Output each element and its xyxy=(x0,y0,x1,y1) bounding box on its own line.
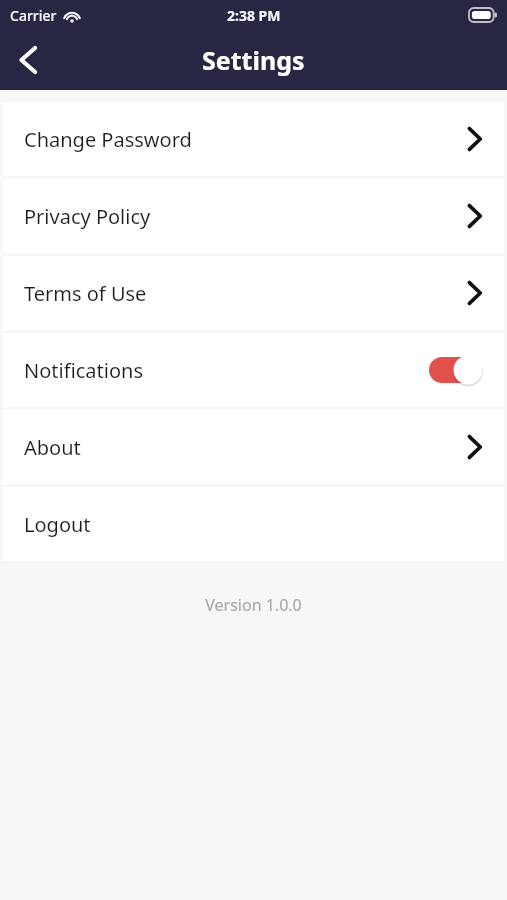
other: Terms of Use xyxy=(466,280,483,306)
button[interactable]: Back xyxy=(0,32,56,88)
staticText: Terms of Use xyxy=(24,280,147,307)
button[interactable]: About xyxy=(3,410,504,484)
staticText: Privacy Policy xyxy=(24,203,151,230)
staticText: 2:38 PM xyxy=(227,6,281,25)
other: Privacy Policy xyxy=(466,203,483,229)
button[interactable]: Notifications toggle xyxy=(429,355,483,385)
staticText: Change Password xyxy=(24,126,192,153)
staticText: Logout xyxy=(24,511,91,538)
staticText: Version 1.0.0 xyxy=(205,594,302,616)
button[interactable]: Privacy Policy xyxy=(3,179,504,253)
button[interactable]: Logout xyxy=(3,487,504,561)
button[interactable]: Change Password xyxy=(3,102,504,176)
staticText: Notifications xyxy=(24,357,143,384)
button[interactable]: Notifications xyxy=(3,333,504,407)
staticText: Settings xyxy=(202,43,305,77)
button[interactable]: Terms of Use xyxy=(3,256,504,330)
other: About xyxy=(466,434,483,460)
staticText: About xyxy=(24,434,81,461)
other: Change Password xyxy=(466,126,483,152)
staticText: Carrier xyxy=(10,6,57,25)
